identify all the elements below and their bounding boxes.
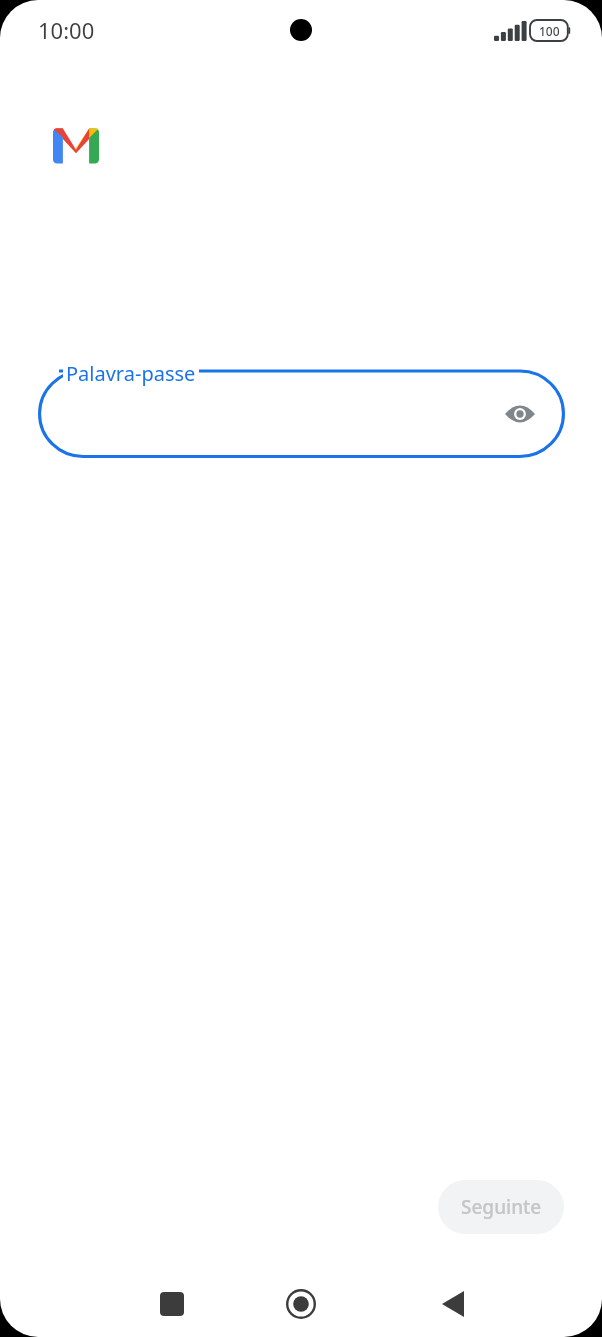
staticText: Palavra-passe bbox=[66, 360, 196, 387]
staticText: Seguinte bbox=[461, 1194, 542, 1220]
button[interactable]: Palavra-passe bbox=[38, 362, 565, 458]
button[interactable]: Início bbox=[275, 1278, 327, 1330]
staticText: 100 bbox=[539, 23, 560, 39]
button[interactable]: Mostrar palavra-passe bbox=[498, 392, 542, 436]
button[interactable]: Anterior bbox=[429, 1280, 477, 1328]
button[interactable]: Seguinte bbox=[438, 1180, 564, 1234]
button[interactable]: Gmail bbox=[40, 110, 111, 181]
button[interactable]: Recentes bbox=[148, 1280, 196, 1328]
staticText: 10:00 bbox=[38, 15, 95, 45]
